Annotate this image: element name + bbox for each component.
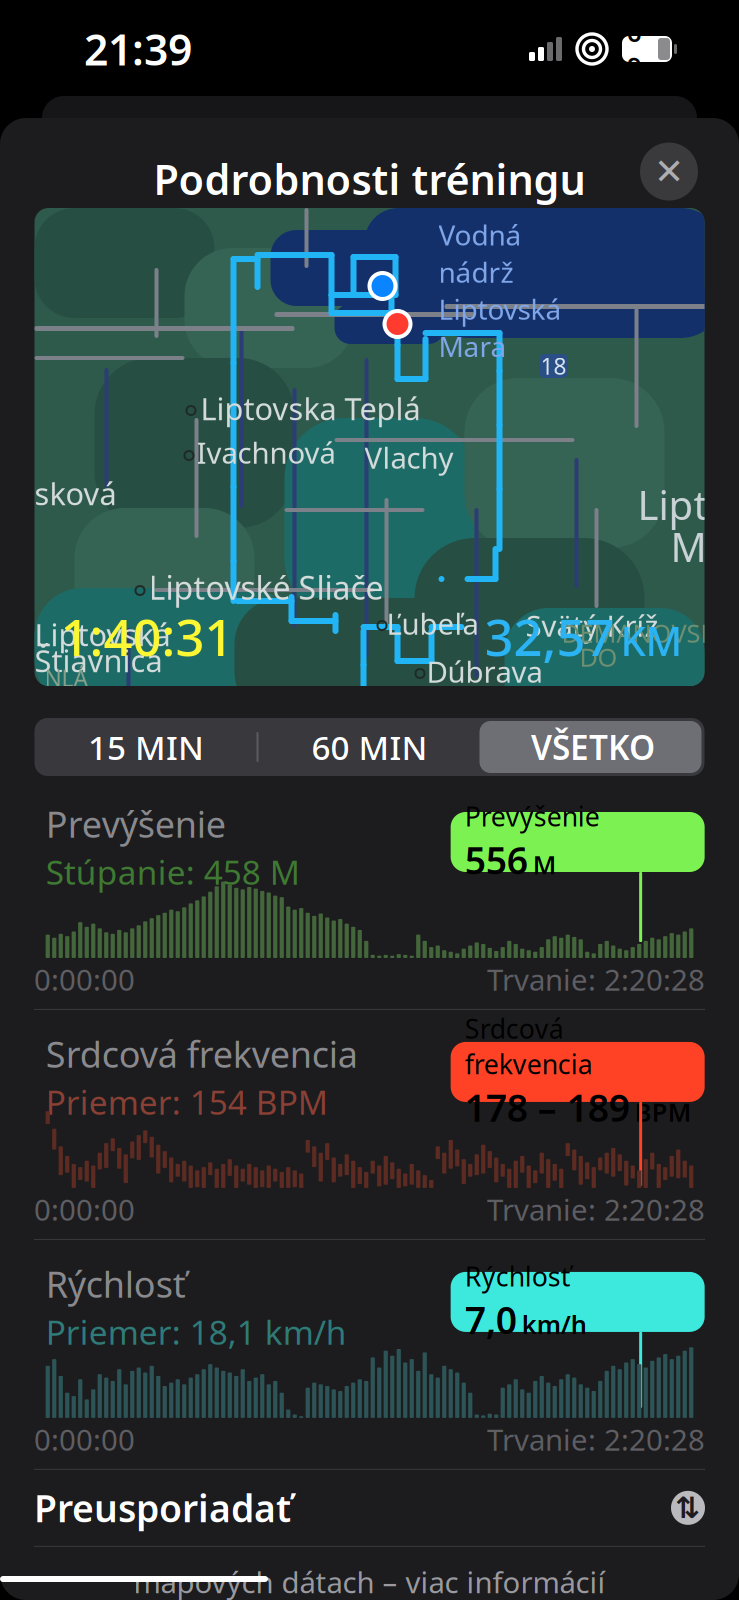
staticText: 0:00:00 bbox=[34, 960, 135, 999]
staticText: Miku bbox=[670, 520, 739, 573]
staticText: Srdcová frekvencia bbox=[46, 1030, 358, 1078]
staticText: Rýchlosť bbox=[465, 1258, 571, 1294]
staticText: Ivachnová bbox=[196, 433, 335, 472]
staticText: 69 bbox=[627, 15, 641, 83]
staticText: Trvanie: 2:20:28 bbox=[487, 960, 705, 999]
staticText: nádrž bbox=[438, 253, 513, 290]
button[interactable]: 15 MIN bbox=[34, 718, 257, 776]
staticText: Liptovská bbox=[34, 614, 170, 655]
staticText: Preusporiadať bbox=[34, 1483, 291, 1533]
staticText: – viac informácií bbox=[374, 1562, 605, 1600]
button[interactable]: Zavrieť bbox=[640, 143, 698, 201]
staticText: Dúbrava bbox=[426, 652, 542, 691]
staticText: Liptov bbox=[637, 478, 739, 531]
staticText: Prevýšenie bbox=[465, 798, 600, 834]
staticText: VŠETKO bbox=[531, 725, 655, 769]
staticText: 0:00:00 bbox=[34, 1190, 135, 1229]
staticText: Liptovska Teplá bbox=[200, 388, 420, 429]
staticText: km/h bbox=[522, 1307, 587, 1341]
staticText: Priemer: 18,1 km/h bbox=[46, 1310, 347, 1354]
staticText: 18 bbox=[540, 351, 566, 381]
staticText: Svätý Kríž bbox=[525, 606, 658, 645]
staticText: 32,57 bbox=[484, 603, 614, 670]
staticText: Mara bbox=[438, 327, 506, 365]
staticText: 556 bbox=[465, 835, 528, 884]
staticText: Štiavnica bbox=[34, 640, 162, 681]
staticText: Vodná bbox=[438, 216, 521, 253]
button[interactable]: VŠETKO bbox=[481, 718, 704, 776]
button[interactable]: mapových dátach bbox=[0, 1555, 739, 1600]
staticText: 60 MIN bbox=[311, 725, 427, 769]
staticText: Priemer: 154 BPM bbox=[46, 1080, 328, 1124]
staticText: sková bbox=[34, 473, 116, 514]
staticText: Liptovská bbox=[438, 290, 561, 328]
staticText: Vlachy bbox=[364, 438, 453, 477]
staticText: 15 MIN bbox=[88, 725, 204, 769]
staticText: 178 – 189 bbox=[465, 1083, 630, 1132]
staticText: Prevýšenie bbox=[46, 800, 226, 848]
staticText: DEMANOVSKA bbox=[561, 616, 732, 650]
staticText: NLÁ bbox=[44, 663, 87, 693]
staticText: Srdcová frekvencia bbox=[465, 1011, 593, 1082]
staticText: 0:00:00 bbox=[34, 1420, 135, 1459]
staticText: mapových dátach bbox=[133, 1562, 374, 1600]
staticText: Podrobnosti tréningu bbox=[153, 152, 585, 206]
staticText: Liptovské Sliače bbox=[148, 566, 383, 608]
staticText: Trvanie: 2:20:28 bbox=[487, 1420, 705, 1459]
staticText: Ľubeľa bbox=[386, 604, 478, 643]
staticText: 7,0 bbox=[465, 1295, 517, 1344]
staticText: DO bbox=[579, 640, 617, 674]
staticText: Stúpanie: 458 M bbox=[46, 850, 300, 894]
staticText: Rýchlosť bbox=[46, 1260, 186, 1308]
staticText: KM bbox=[620, 614, 682, 667]
staticText: 21:39 bbox=[84, 21, 192, 77]
staticText: BPM bbox=[635, 1095, 692, 1129]
button[interactable]: Preusporiadať bbox=[0, 1470, 739, 1546]
button[interactable]: 60 MIN bbox=[257, 718, 481, 776]
staticText: ⇅ bbox=[675, 1491, 700, 1524]
staticText: 1:40:31 bbox=[60, 603, 233, 670]
staticText: ✕ bbox=[654, 151, 684, 192]
staticText: M bbox=[533, 847, 557, 881]
staticText: Trvanie: 2:20:28 bbox=[487, 1190, 705, 1229]
